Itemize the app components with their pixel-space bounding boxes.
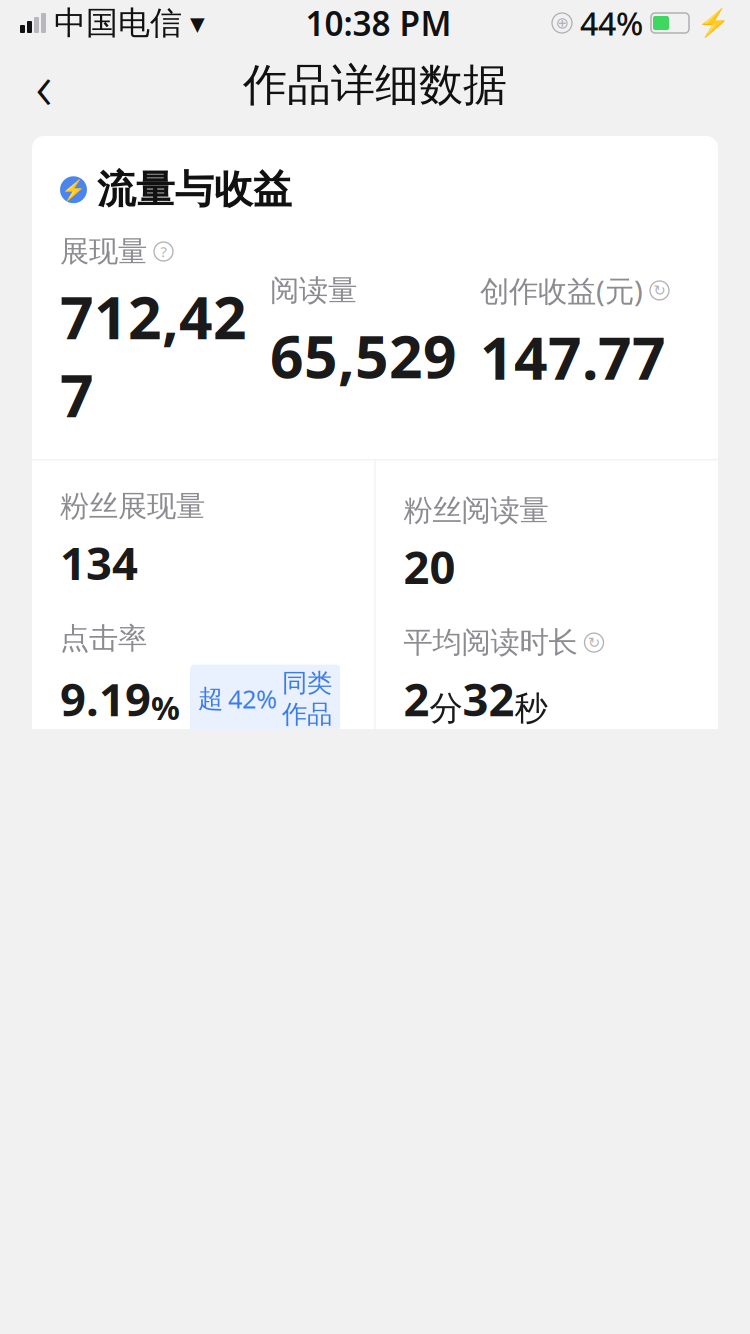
staticText: 9.19 (60, 669, 151, 729)
staticText: ▾ (190, 6, 205, 40)
staticText: 20 (403, 536, 455, 597)
staticText: 分 (429, 688, 462, 729)
staticText: 点击率 (60, 621, 147, 657)
staticText: 粉丝阅读量 (403, 492, 548, 528)
staticText: 44% (580, 2, 643, 44)
staticText: 粉丝展现量 (60, 488, 205, 524)
staticText: 秒 (514, 688, 547, 729)
staticText: 流量与收益 (97, 166, 292, 213)
staticText: 65,529 (270, 316, 457, 394)
staticText: ⊕ (555, 14, 568, 32)
staticText: 147.77 (480, 318, 666, 396)
staticText: ⚡ (697, 8, 730, 38)
staticText: 创作收益(元) (480, 271, 643, 310)
staticText: 42% (228, 682, 277, 715)
staticText: ? (160, 242, 166, 261)
staticText: 2 (403, 669, 429, 729)
staticText: 10:38 PM (305, 1, 451, 45)
staticText: 中国电信 (54, 3, 182, 43)
staticText: % (151, 686, 180, 729)
staticText: 712,427 (60, 277, 247, 433)
staticText: 超 (198, 683, 223, 714)
button[interactable]: Back (12, 53, 76, 117)
staticText: ⚡ (61, 178, 86, 201)
staticText: 作品详细数据 (243, 58, 507, 112)
staticText: ↻ (653, 282, 665, 299)
staticText: 平均阅读时长 (403, 625, 577, 661)
staticText: 阅读量 (270, 272, 357, 308)
staticText: ‹ (35, 42, 52, 127)
staticText: 134 (60, 532, 138, 593)
staticText: 同类作品 (282, 668, 332, 730)
staticText: 32 (462, 669, 514, 729)
staticText: 展现量 (60, 233, 147, 269)
staticText: ↻ (588, 634, 600, 651)
